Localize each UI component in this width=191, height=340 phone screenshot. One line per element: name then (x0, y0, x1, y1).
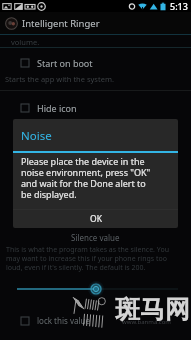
staticText: Hide icon (37, 102, 77, 114)
button[interactable]: Start on boot (0, 57, 191, 69)
staticText: Please place the device in the noise env… (21, 155, 158, 200)
staticText: www.banma.com (122, 318, 171, 326)
staticText: Intelligent Ringer (22, 17, 100, 30)
staticText: Start on boot (37, 57, 93, 69)
button[interactable]: OK (13, 210, 178, 228)
other: App icon (5, 17, 18, 30)
button[interactable]: lock this value (0, 315, 191, 326)
staticText: OK (90, 213, 102, 225)
staticText: Silence value (71, 232, 120, 243)
staticText: Noise (21, 128, 52, 144)
staticText: 斑马网 (115, 294, 190, 325)
staticText: Starts the app with the system. (5, 74, 114, 84)
button[interactable]: App icon (0, 12, 191, 34)
staticText: volume. (11, 37, 40, 47)
staticText: This is what the program takes as the si… (6, 245, 169, 272)
staticText: 5:13 (170, 0, 188, 12)
button[interactable]: Hide icon (0, 102, 191, 114)
staticText: lock this value (37, 315, 90, 326)
